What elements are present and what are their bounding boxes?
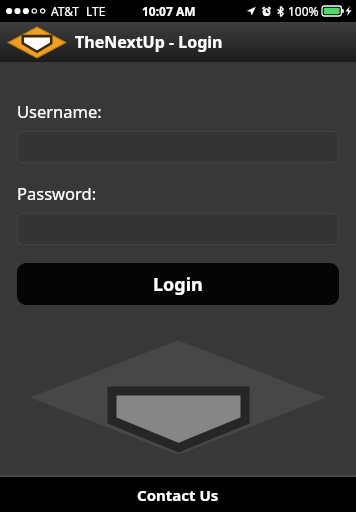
button[interactable]: Contact Us: [0, 477, 356, 512]
staticText: AT&T: [51, 3, 79, 19]
button[interactable]: [17, 213, 339, 245]
staticText: Login: [153, 272, 203, 297]
staticText: Password:: [17, 182, 97, 204]
staticText: Contact Us: [137, 485, 219, 505]
button[interactable]: [17, 131, 339, 163]
staticText: 10:07 AM: [142, 3, 196, 19]
button[interactable]: Login: [17, 263, 339, 305]
staticText: TheNextUp - Login: [75, 31, 223, 53]
other: TheNextUp logo: [8, 27, 66, 58]
staticText: LTE: [86, 3, 106, 19]
staticText: Username:: [17, 100, 102, 122]
staticText: 100%: [288, 3, 319, 19]
